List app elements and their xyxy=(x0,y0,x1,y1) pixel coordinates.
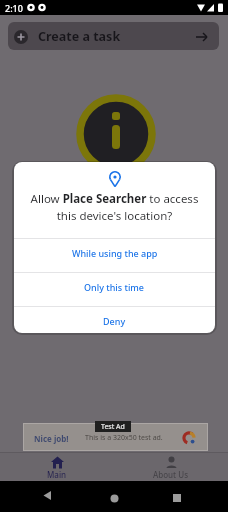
staticText: Create a task xyxy=(38,28,121,45)
staticText: Nice job! xyxy=(34,433,69,444)
button[interactable]: Deny xyxy=(14,306,215,333)
button[interactable]: About Us xyxy=(114,452,228,481)
button[interactable]: Nice job! xyxy=(23,423,208,451)
staticText: 2:10 xyxy=(5,2,23,14)
staticText: Main xyxy=(47,469,67,480)
button[interactable] xyxy=(161,484,193,512)
button[interactable] xyxy=(98,484,130,512)
staticText: About Us xyxy=(153,469,189,480)
staticText: Allow Place Searcher to access this devi… xyxy=(14,191,215,223)
button[interactable] xyxy=(31,481,63,509)
button[interactable]: While using the app xyxy=(14,238,215,272)
staticText: Only this time xyxy=(84,281,145,293)
staticText: Test Ad xyxy=(101,422,125,432)
staticText: Deny xyxy=(103,315,126,327)
staticText: This is a 320x50 test ad. xyxy=(85,433,163,443)
button[interactable]: Only this time xyxy=(14,272,215,306)
staticText: While using the app xyxy=(72,247,158,259)
button[interactable]: Create a task xyxy=(8,22,219,50)
button[interactable]: Main xyxy=(0,452,114,481)
